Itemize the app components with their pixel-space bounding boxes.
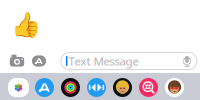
button[interactable]: Browse iMessage apps [30, 52, 48, 70]
staticText: Text Message [68, 53, 138, 69]
button[interactable]: Memoji [112, 78, 133, 97]
button[interactable]: Images [138, 78, 159, 97]
button[interactable]: Photos [8, 78, 29, 97]
button[interactable]: Memoji [164, 78, 185, 97]
button[interactable]: Fitness [60, 78, 81, 97]
button[interactable]: Digital Touch [86, 78, 107, 97]
staticText: 👍 [11, 11, 41, 39]
button[interactable]: Text Message [61, 52, 197, 69]
button[interactable]: App Store [34, 78, 55, 97]
button[interactable]: Take photo or video [7, 52, 27, 70]
